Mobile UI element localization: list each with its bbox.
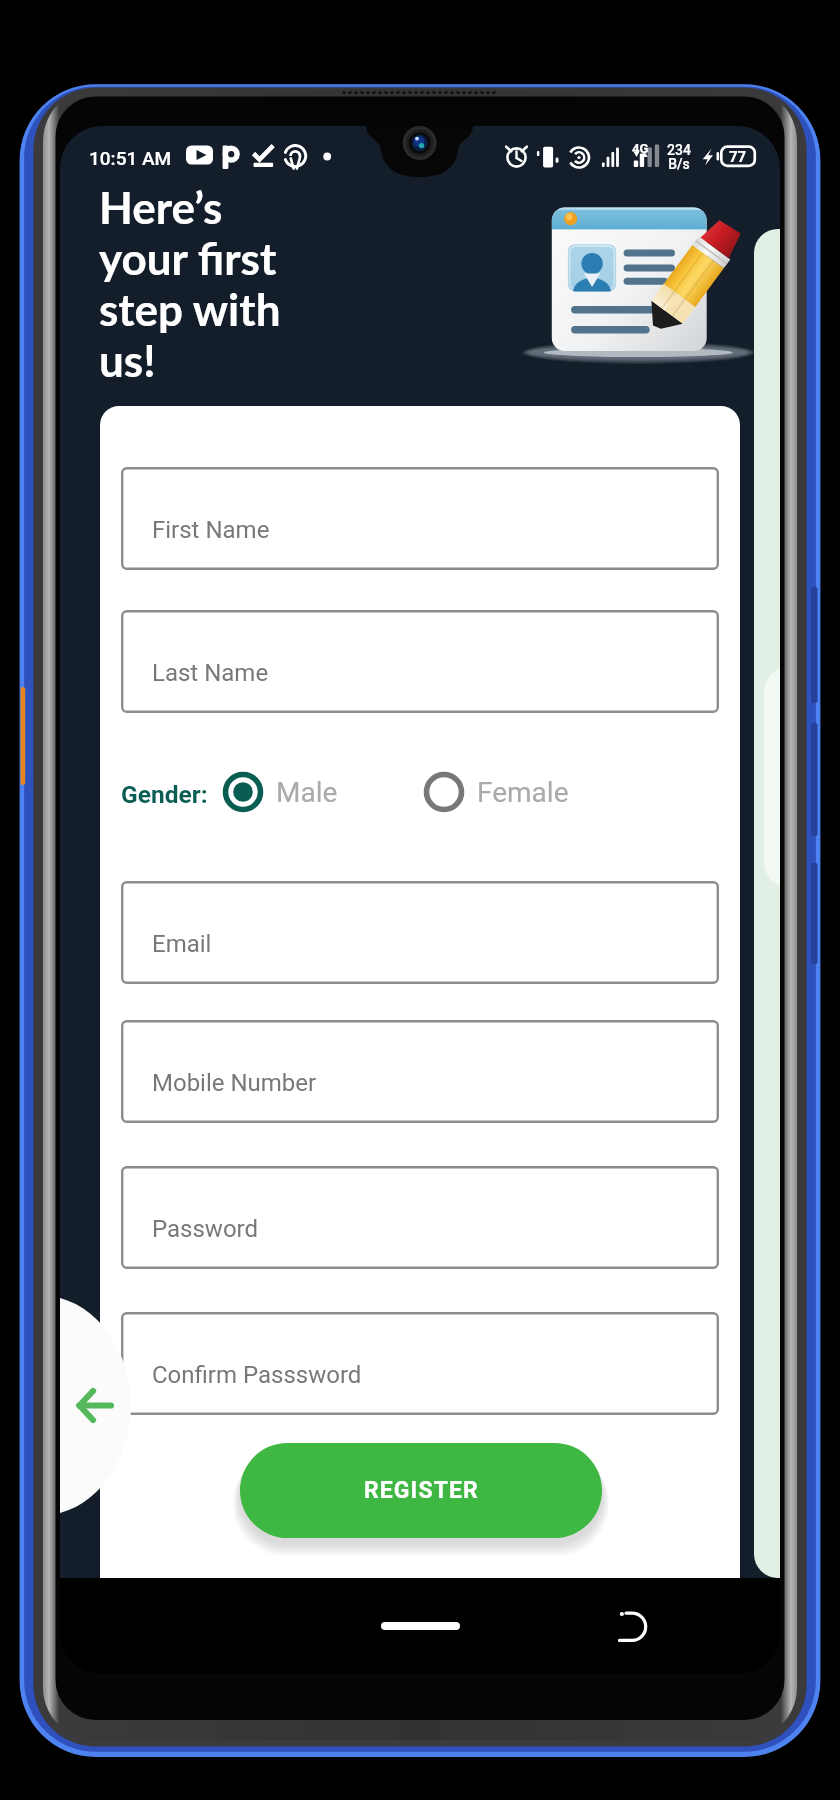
- staticText: Email: [152, 930, 212, 958]
- button[interactable]: Female: [421, 769, 569, 815]
- button[interactable]: Back: [60, 1298, 131, 1513]
- staticText: REGISTER: [364, 1477, 479, 1504]
- button[interactable]: REGISTER: [240, 1443, 602, 1538]
- button[interactable]: First Name: [121, 467, 719, 570]
- staticText: 77: [729, 148, 747, 166]
- staticText: Female: [477, 776, 569, 809]
- staticText: Here’s your first step with us!: [99, 181, 281, 386]
- button[interactable]: Email: [121, 881, 719, 984]
- button[interactable]: Password: [121, 1166, 719, 1269]
- staticText: Last Name: [152, 659, 269, 687]
- staticText: Mobile Number: [152, 1069, 317, 1097]
- button[interactable]: Last Name: [121, 610, 719, 713]
- staticText: Confirm Passsword: [152, 1361, 362, 1389]
- staticText: First Name: [152, 516, 270, 544]
- staticText: Gender:: [121, 780, 208, 809]
- button[interactable]: Mobile Number: [121, 1020, 719, 1123]
- staticText: Male: [276, 776, 338, 809]
- button[interactable]: Home: [381, 1622, 460, 1630]
- button[interactable]: Confirm Passsword: [121, 1312, 719, 1415]
- staticText: 10:51 AM: [89, 147, 172, 169]
- button[interactable]: Male: [220, 769, 338, 815]
- staticText: Password: [152, 1215, 259, 1243]
- button[interactable]: Back: [612, 1606, 656, 1650]
- staticText: 4G: [632, 141, 649, 156]
- staticText: 234 B/s: [667, 142, 691, 173]
